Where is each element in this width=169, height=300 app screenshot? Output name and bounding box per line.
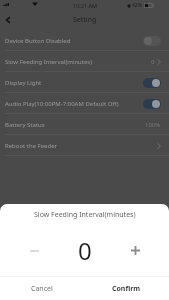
staticText: Audio Play(10:00PM-7:00AM Default Off) [5, 100, 143, 108]
button[interactable]: Device Button Disabled [0, 30, 169, 51]
staticText: Display Light [5, 79, 143, 87]
staticText: Slow Feeding Interval(minutes) [5, 58, 151, 66]
button[interactable]: Confirm [84, 277, 169, 300]
button[interactable]: Toggle [143, 78, 161, 88]
staticText: 0 [151, 58, 155, 66]
staticText: 100% [145, 121, 161, 129]
button[interactable]: Battery Status [0, 114, 169, 135]
staticText: Slow Feeding Interval(minutes) [34, 210, 136, 220]
button[interactable]: Audio Play(10:00PM-7:00AM Default Off) [0, 93, 169, 114]
button[interactable]: Display Light [0, 72, 169, 93]
staticText: Device Button Disabled [5, 37, 143, 45]
button[interactable]: Increase [101, 225, 169, 276]
button[interactable]: Back [0, 12, 16, 28]
staticText: 10:21 AM [73, 2, 97, 9]
staticText: Setting [73, 15, 97, 25]
staticText: Battery Status [5, 121, 145, 129]
staticText: 42% [132, 2, 142, 9]
button[interactable]: Slow Feeding Interval(minutes) [0, 51, 169, 72]
button[interactable]: Reboot the Feeder [0, 135, 169, 156]
button[interactable]: Cancel [0, 277, 84, 300]
staticText: 0 [78, 234, 92, 267]
staticText: Confirm [112, 284, 141, 294]
button[interactable]: Toggle [143, 99, 161, 109]
staticText: Reboot the Feeder [5, 142, 157, 150]
button[interactable]: Toggle [143, 36, 161, 46]
staticText: Cancel [31, 284, 53, 294]
